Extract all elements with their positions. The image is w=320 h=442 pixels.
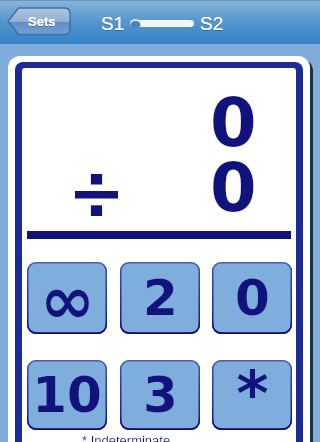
staticText: 3	[143, 366, 178, 424]
staticText: S1	[101, 14, 125, 35]
button[interactable]: ∞	[27, 262, 107, 334]
button[interactable]: 2	[120, 262, 200, 334]
staticText: 0	[210, 84, 254, 162]
staticText: * Indeterminate	[82, 433, 171, 442]
button[interactable]: *	[212, 360, 292, 430]
button[interactable]: 3	[120, 360, 200, 430]
staticText: 0	[210, 149, 254, 227]
staticText: S1	[101, 13, 125, 34]
staticText: ∞	[40, 262, 95, 334]
button[interactable]: Sets	[7, 7, 71, 36]
staticText: Sets	[28, 14, 56, 29]
staticText: *	[236, 360, 269, 427]
staticText: S2	[200, 13, 224, 34]
button[interactable]: 0	[212, 262, 292, 334]
staticText: Sets	[28, 15, 56, 30]
staticText: 2	[143, 269, 178, 327]
button[interactable]: Set blend slider	[130, 18, 194, 29]
button[interactable]: 10	[27, 360, 107, 430]
staticText: 0	[235, 269, 270, 327]
staticText: S2	[200, 14, 224, 35]
staticText: 10	[32, 366, 102, 424]
